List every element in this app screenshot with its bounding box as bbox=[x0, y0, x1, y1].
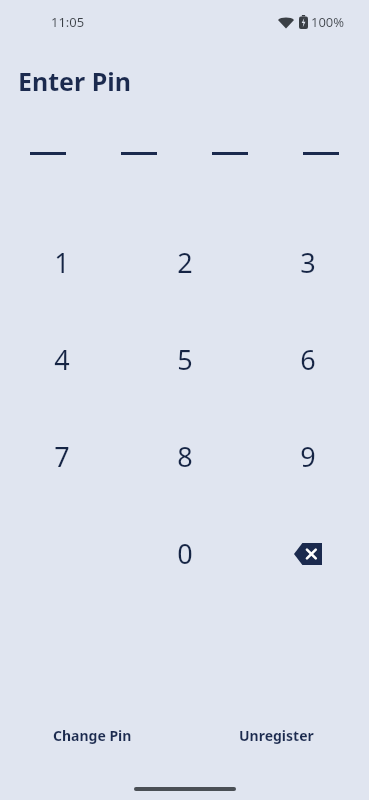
staticText: 0 bbox=[177, 535, 193, 572]
staticText: 8 bbox=[177, 438, 193, 475]
staticText: 5 bbox=[177, 341, 193, 378]
button[interactable]: Backspace bbox=[246, 505, 369, 602]
button[interactable]: 7 bbox=[0, 408, 123, 505]
button[interactable]: 3 bbox=[246, 214, 369, 311]
staticText: 1 bbox=[54, 244, 70, 281]
staticText: 2 bbox=[177, 244, 193, 281]
button[interactable]: 6 bbox=[246, 311, 369, 408]
button[interactable]: 5 bbox=[123, 311, 246, 408]
staticText: Unregister bbox=[239, 726, 314, 745]
button[interactable]: 8 bbox=[123, 408, 246, 505]
staticText: 4 bbox=[54, 341, 70, 378]
staticText: Change Pin bbox=[53, 726, 132, 745]
button[interactable]: Change Pin bbox=[51, 720, 134, 751]
staticText: 11:05 bbox=[51, 13, 85, 31]
button[interactable]: 2 bbox=[123, 214, 246, 311]
staticText: 9 bbox=[300, 438, 316, 475]
staticText: 7 bbox=[54, 438, 70, 475]
staticText: 6 bbox=[300, 341, 316, 378]
staticText: Enter Pin bbox=[18, 64, 131, 98]
button[interactable]: 0 bbox=[123, 505, 246, 602]
button[interactable]: 9 bbox=[246, 408, 369, 505]
staticText: 100% bbox=[311, 13, 345, 31]
button[interactable]: Unregister bbox=[237, 720, 316, 751]
staticText: 3 bbox=[300, 244, 316, 281]
button[interactable]: 1 bbox=[0, 214, 123, 311]
button[interactable]: 4 bbox=[0, 311, 123, 408]
